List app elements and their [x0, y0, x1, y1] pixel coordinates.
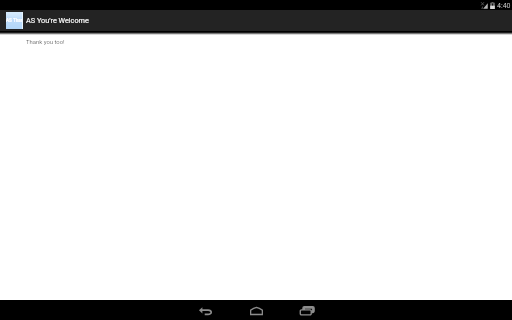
button[interactable]: Recent apps [280, 300, 334, 320]
staticText: 4:40 [497, 2, 511, 10]
staticText: AS Thanks [6, 18, 23, 23]
button[interactable]: Home [229, 300, 283, 320]
button[interactable]: AS Thanks [0, 10, 95, 31]
staticText: AS You're Welcome [26, 16, 89, 25]
button[interactable]: Back [178, 300, 232, 320]
staticText: Thank you too! [26, 39, 65, 46]
